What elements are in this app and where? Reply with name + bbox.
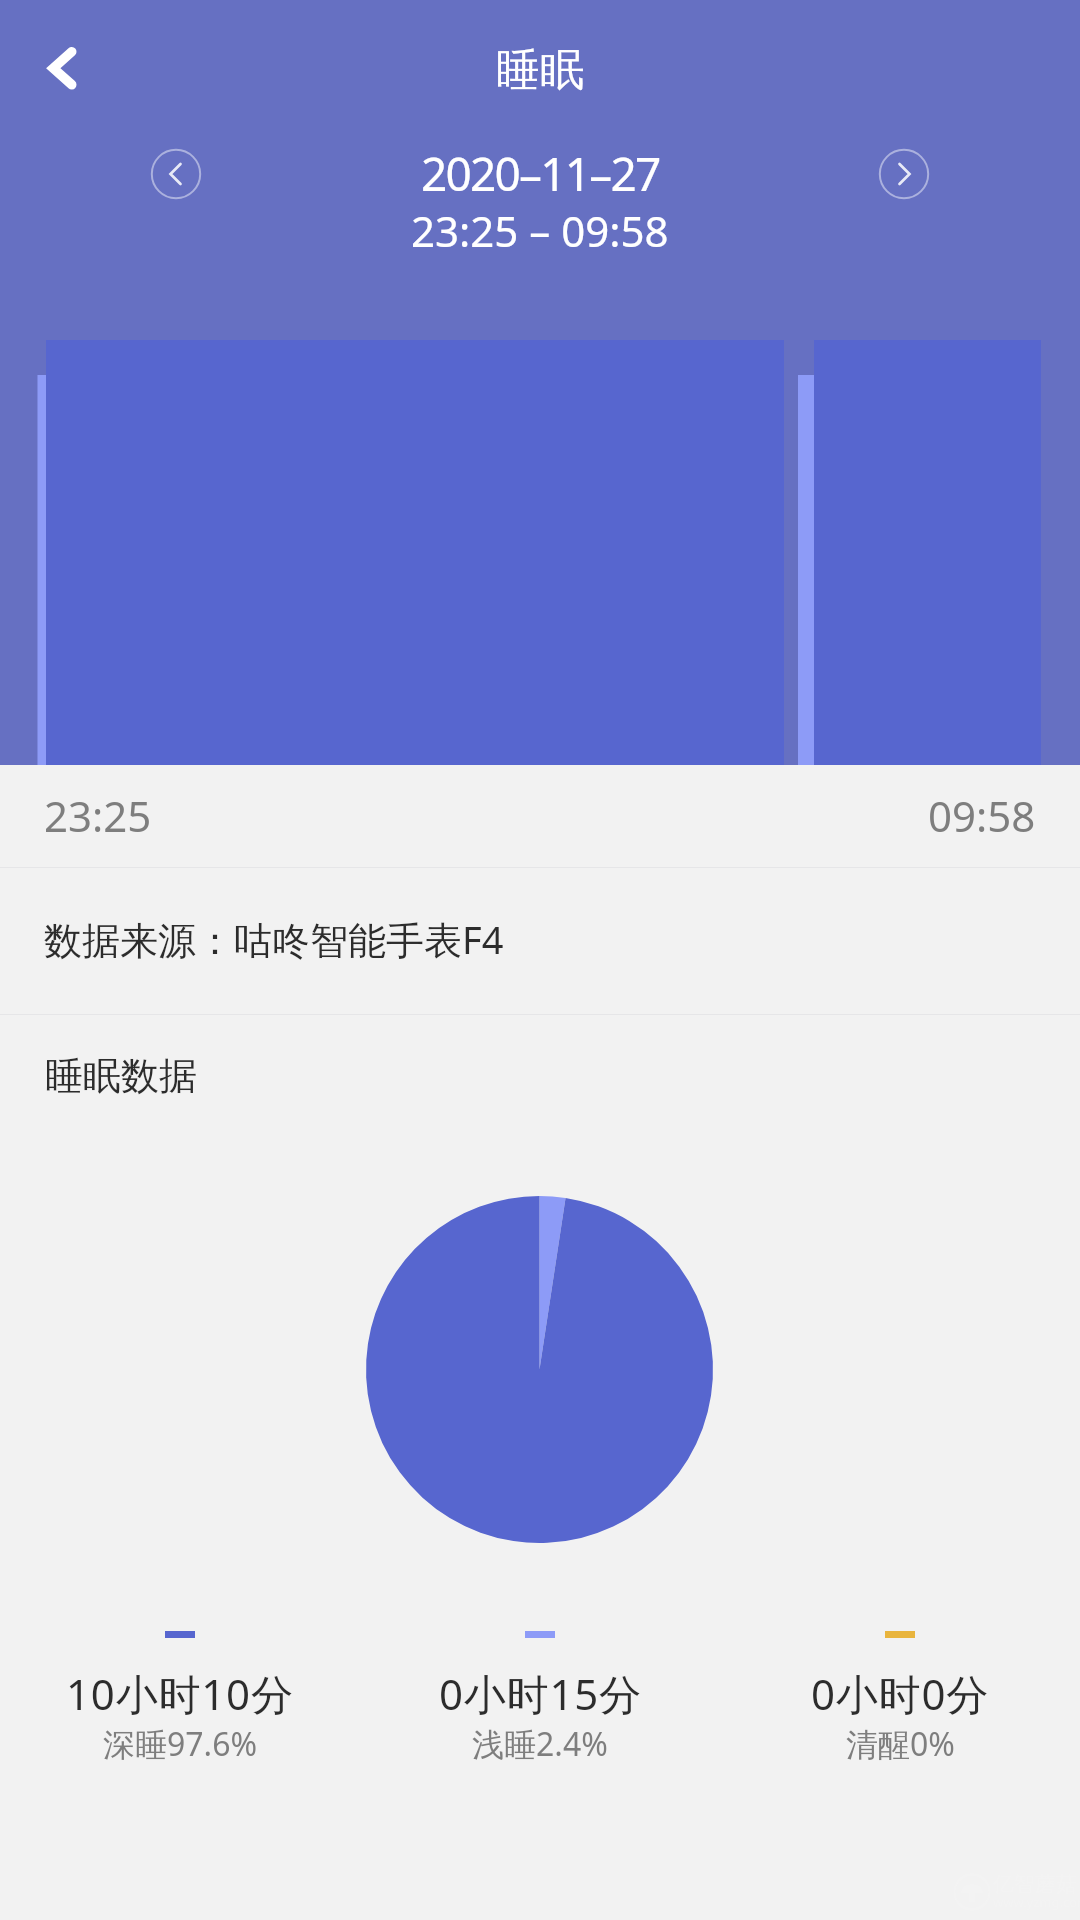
button[interactable]: Back — [18, 24, 106, 112]
button[interactable]: 0小时15分 — [360, 1631, 720, 1766]
button[interactable]: 10小时10分 — [0, 1631, 360, 1766]
staticText: 2020–11–27 — [421, 142, 660, 205]
button[interactable]: Next day — [859, 129, 949, 219]
button[interactable]: Previous day — [131, 129, 221, 219]
staticText: 23:25 – 09:58 — [411, 202, 669, 259]
staticText: 浅睡2.4% — [472, 1722, 608, 1766]
staticText: 睡眠 — [0, 43, 1080, 98]
button[interactable]: 0小时0分 — [720, 1631, 1080, 1766]
staticText: 0小时15分 — [439, 1665, 642, 1722]
staticText: 0小时0分 — [811, 1665, 990, 1722]
staticText: 10小时10分 — [66, 1665, 294, 1722]
staticText: 09:58 — [928, 787, 1036, 844]
staticText: 睡眠数据 — [45, 1052, 197, 1100]
staticText: 23:25 — [44, 787, 152, 844]
staticText: 数据来源：咕咚智能手表F4 — [44, 913, 504, 965]
staticText: 深睡97.6% — [103, 1722, 258, 1766]
button[interactable]: 数据来源：咕咚智能手表F4 — [0, 868, 1080, 1014]
staticText: 清醒0% — [846, 1722, 955, 1766]
